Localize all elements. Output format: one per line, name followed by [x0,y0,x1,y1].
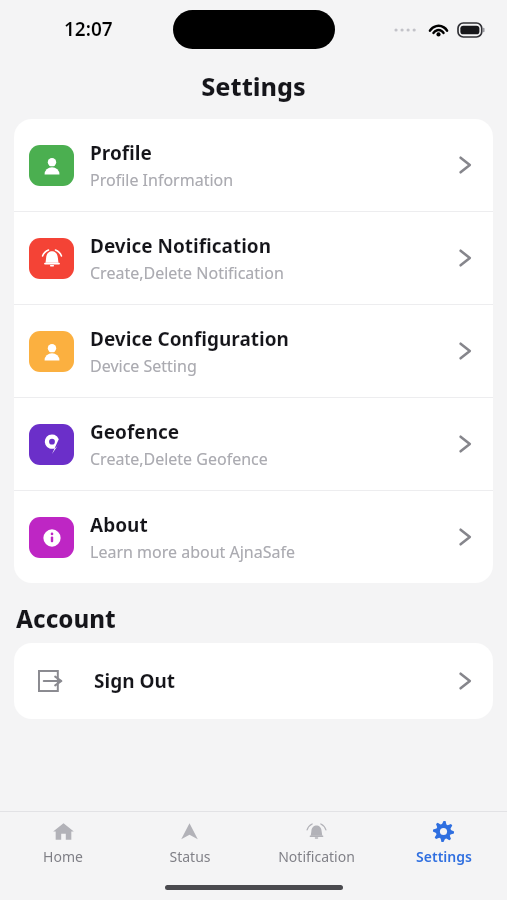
button[interactable]: Sign Out [14,643,493,719]
button[interactable]: Settings [380,812,507,874]
staticText: Account [16,602,116,635]
button[interactable]: Profile [14,119,493,211]
staticText: Learn more about AjnaSafe [90,541,295,563]
staticText: Sign Out [94,668,455,694]
button[interactable]: Device Notification [14,212,493,304]
staticText: Device Configuration [90,326,289,352]
staticText: Device Setting [90,355,197,377]
staticText: Device Notification [90,233,272,259]
staticText: Create,Delete Geofence [90,448,268,470]
staticText: Status [169,847,211,866]
staticText: Notification [278,847,355,866]
staticText: Settings [416,847,472,866]
button[interactable]: About [14,491,493,583]
button[interactable]: Home [0,812,126,874]
button[interactable]: Geofence [14,398,493,490]
staticText: Profile Information [90,169,234,191]
staticText: 12:07 [64,16,113,42]
staticText: Geofence [90,419,180,445]
button[interactable]: Status [126,812,253,874]
button[interactable]: Device Configuration [14,305,493,397]
button[interactable]: Notification [253,812,380,874]
staticText: Profile [90,140,152,166]
staticText: Settings [201,69,306,103]
staticText: About [90,512,148,538]
staticText: Home [43,847,83,866]
staticText: Create,Delete Notification [90,262,284,284]
